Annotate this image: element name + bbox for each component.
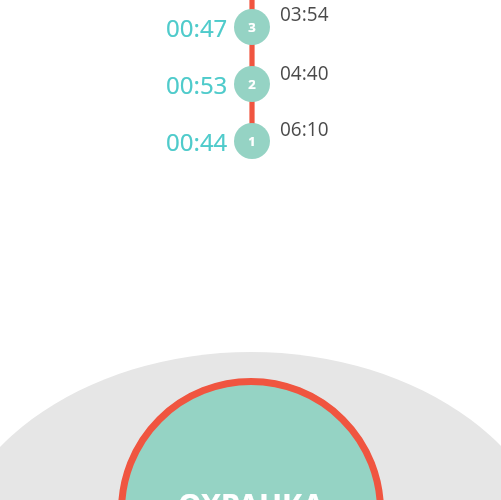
staticText: 3: [248, 18, 256, 36]
button[interactable]: 03:54: [280, 0, 390, 29]
staticText: 1: [248, 132, 256, 150]
staticText: ОХРАНКА: [150, 484, 352, 500]
button[interactable]: 06:10: [280, 114, 390, 144]
button[interactable]: 00:53: [98, 68, 228, 100]
staticText: 03:54: [280, 1, 329, 27]
button[interactable]: Lap 2: [234, 66, 270, 102]
button[interactable]: 04:40: [280, 58, 390, 88]
staticText: 00:47: [166, 11, 228, 43]
staticText: 04:40: [280, 60, 329, 86]
button[interactable]: ОХРАНКА: [0, 0, 501, 500]
button[interactable]: Lap 3: [234, 9, 270, 45]
button[interactable]: 00:47: [98, 11, 228, 43]
staticText: 2: [248, 75, 256, 93]
button[interactable]: Lap 1: [234, 123, 270, 159]
button[interactable]: 00:44: [98, 125, 228, 157]
staticText: 00:53: [166, 68, 228, 100]
staticText: 06:10: [280, 116, 329, 142]
staticText: 00:44: [166, 125, 228, 157]
